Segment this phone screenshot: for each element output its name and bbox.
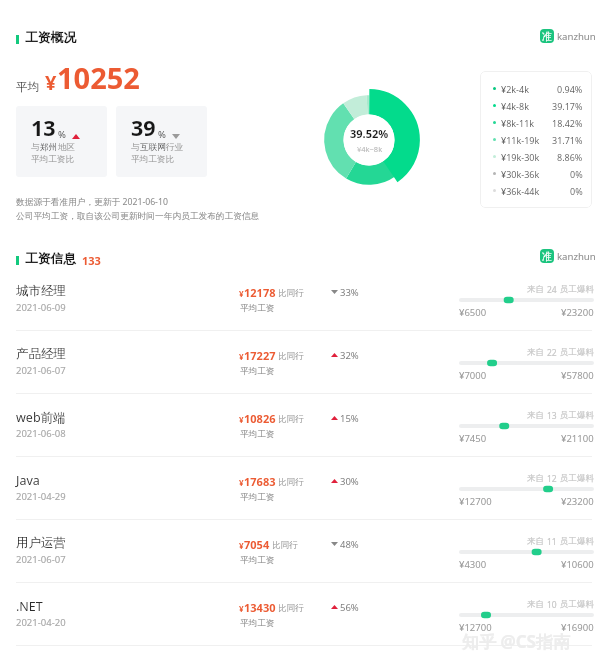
staticText: 行业 — [166, 142, 184, 153]
staticText: 13430 — [244, 600, 276, 615]
button[interactable]: 13 — [16, 106, 107, 177]
staticText: 8.86% — [557, 151, 583, 163]
staticText: 工资概况 — [25, 30, 77, 46]
staticText: 133 — [82, 253, 101, 268]
staticText: Java — [16, 472, 40, 489]
staticText: 与 — [131, 142, 140, 153]
staticText: 来自 — [527, 410, 544, 421]
staticText: 平均 — [16, 80, 39, 94]
staticText: 城市经理 — [16, 283, 66, 299]
staticText: 2021-06-09 — [16, 301, 66, 314]
button[interactable]: 工资概况 — [16, 30, 77, 46]
staticText: ¥16900 — [561, 621, 594, 634]
staticText: 平均工资 — [240, 366, 275, 377]
staticText: 与 — [31, 142, 40, 153]
staticText: ¥ — [239, 351, 244, 362]
staticText: 17683 — [244, 474, 276, 489]
staticText: 比同行 — [278, 477, 304, 488]
staticText: 郑州 — [40, 142, 58, 153]
staticText: 0.94% — [557, 83, 583, 95]
staticText: 员工爆料 — [560, 473, 594, 484]
staticText: 产品经理 — [16, 346, 66, 362]
staticText: 平均工资比 — [131, 154, 174, 165]
staticText: 比同行 — [278, 351, 304, 362]
staticText: ¥30k-36k — [501, 168, 540, 180]
staticText: 0% — [570, 185, 583, 197]
staticText: 平均工资 — [240, 555, 275, 566]
staticText: 24 — [547, 284, 557, 296]
staticText: ¥ — [45, 69, 57, 96]
staticText: 准 — [542, 30, 552, 43]
staticText: ¥11k-19k — [501, 134, 540, 146]
staticText: 来自 — [527, 473, 544, 484]
button[interactable]: 工资信息 — [16, 251, 101, 267]
staticText: 数据源于看准用户，更新于 2021-06-10 — [16, 196, 168, 208]
staticText: ¥ — [239, 603, 244, 614]
button[interactable]: 用户运营 — [0, 520, 600, 583]
staticText: 30% — [340, 475, 359, 488]
button[interactable]: web前端 — [0, 394, 600, 457]
staticText: 来自 — [527, 536, 544, 547]
staticText: 平均工资比 — [31, 154, 74, 165]
staticText: 工资信息 — [25, 251, 77, 267]
staticText: 15% — [340, 412, 359, 425]
staticText: 31.71% — [552, 134, 583, 146]
button[interactable]: 39 — [116, 106, 207, 177]
staticText: 员工爆料 — [560, 599, 594, 610]
staticText: kanzhun — [557, 30, 596, 43]
staticText: 员工爆料 — [560, 284, 594, 295]
staticText: 17227 — [244, 348, 276, 363]
staticText: 比同行 — [278, 603, 304, 614]
staticText: ¥8k-11k — [501, 117, 535, 129]
staticText: 平均工资 — [240, 303, 275, 314]
staticText: 公司平均工资，取自该公司更新时间一年内员工发布的工资信息 — [16, 211, 260, 222]
staticText: 56% — [340, 601, 359, 614]
button[interactable]: .NET — [0, 583, 600, 646]
staticText: 2021-04-29 — [16, 490, 66, 503]
staticText: ¥4k~8k — [357, 144, 383, 154]
staticText: ¥12700 — [459, 621, 492, 634]
staticText: web前端 — [16, 409, 66, 426]
staticText: 39.52% — [350, 126, 389, 141]
staticText: 10 — [547, 599, 557, 611]
staticText: 用户运营 — [16, 535, 66, 551]
button[interactable]: kanzhun logo — [540, 249, 596, 263]
staticText: 平均工资 — [240, 492, 275, 503]
staticText: 48% — [340, 538, 359, 551]
staticText: 10826 — [244, 411, 276, 426]
staticText: .NET — [16, 598, 43, 615]
button[interactable]: Java — [0, 457, 600, 520]
staticText: 来自 — [527, 599, 544, 610]
staticText: 比同行 — [278, 414, 304, 425]
staticText: ¥19k-30k — [501, 151, 540, 163]
staticText: kanzhun — [557, 250, 596, 263]
staticText: 比同行 — [278, 288, 304, 299]
staticText: 员工爆料 — [560, 410, 594, 421]
staticText: 2021-06-07 — [16, 364, 66, 377]
staticText: 2021-06-07 — [16, 553, 66, 566]
staticText: 比同行 — [272, 540, 298, 551]
staticText: 10252 — [57, 58, 140, 97]
staticText: ¥2k-4k — [501, 83, 529, 95]
staticText: ¥ — [239, 477, 244, 488]
staticText: 地区 — [58, 142, 76, 153]
button[interactable]: 产品经理 — [0, 331, 600, 394]
staticText: ¥10600 — [561, 558, 594, 571]
staticText: 平均工资 — [240, 429, 275, 440]
staticText: 13 — [31, 113, 56, 142]
staticText: 员工爆料 — [560, 347, 594, 358]
staticText: ¥ — [239, 540, 244, 551]
staticText: 平均工资 — [240, 618, 275, 629]
staticText: 互联网 — [140, 142, 166, 153]
staticText: 来自 — [527, 347, 544, 358]
staticText: ¥21100 — [561, 432, 594, 445]
staticText: % — [58, 128, 66, 141]
staticText: 7054 — [244, 537, 270, 552]
button[interactable]: kanzhun logo — [540, 29, 596, 43]
staticText: ¥ — [239, 288, 244, 299]
staticText: 22 — [547, 347, 557, 359]
staticText: 18.42% — [552, 117, 583, 129]
button[interactable]: 城市经理 — [0, 268, 600, 331]
staticText: 33% — [340, 286, 359, 299]
staticText: 32% — [340, 349, 359, 362]
